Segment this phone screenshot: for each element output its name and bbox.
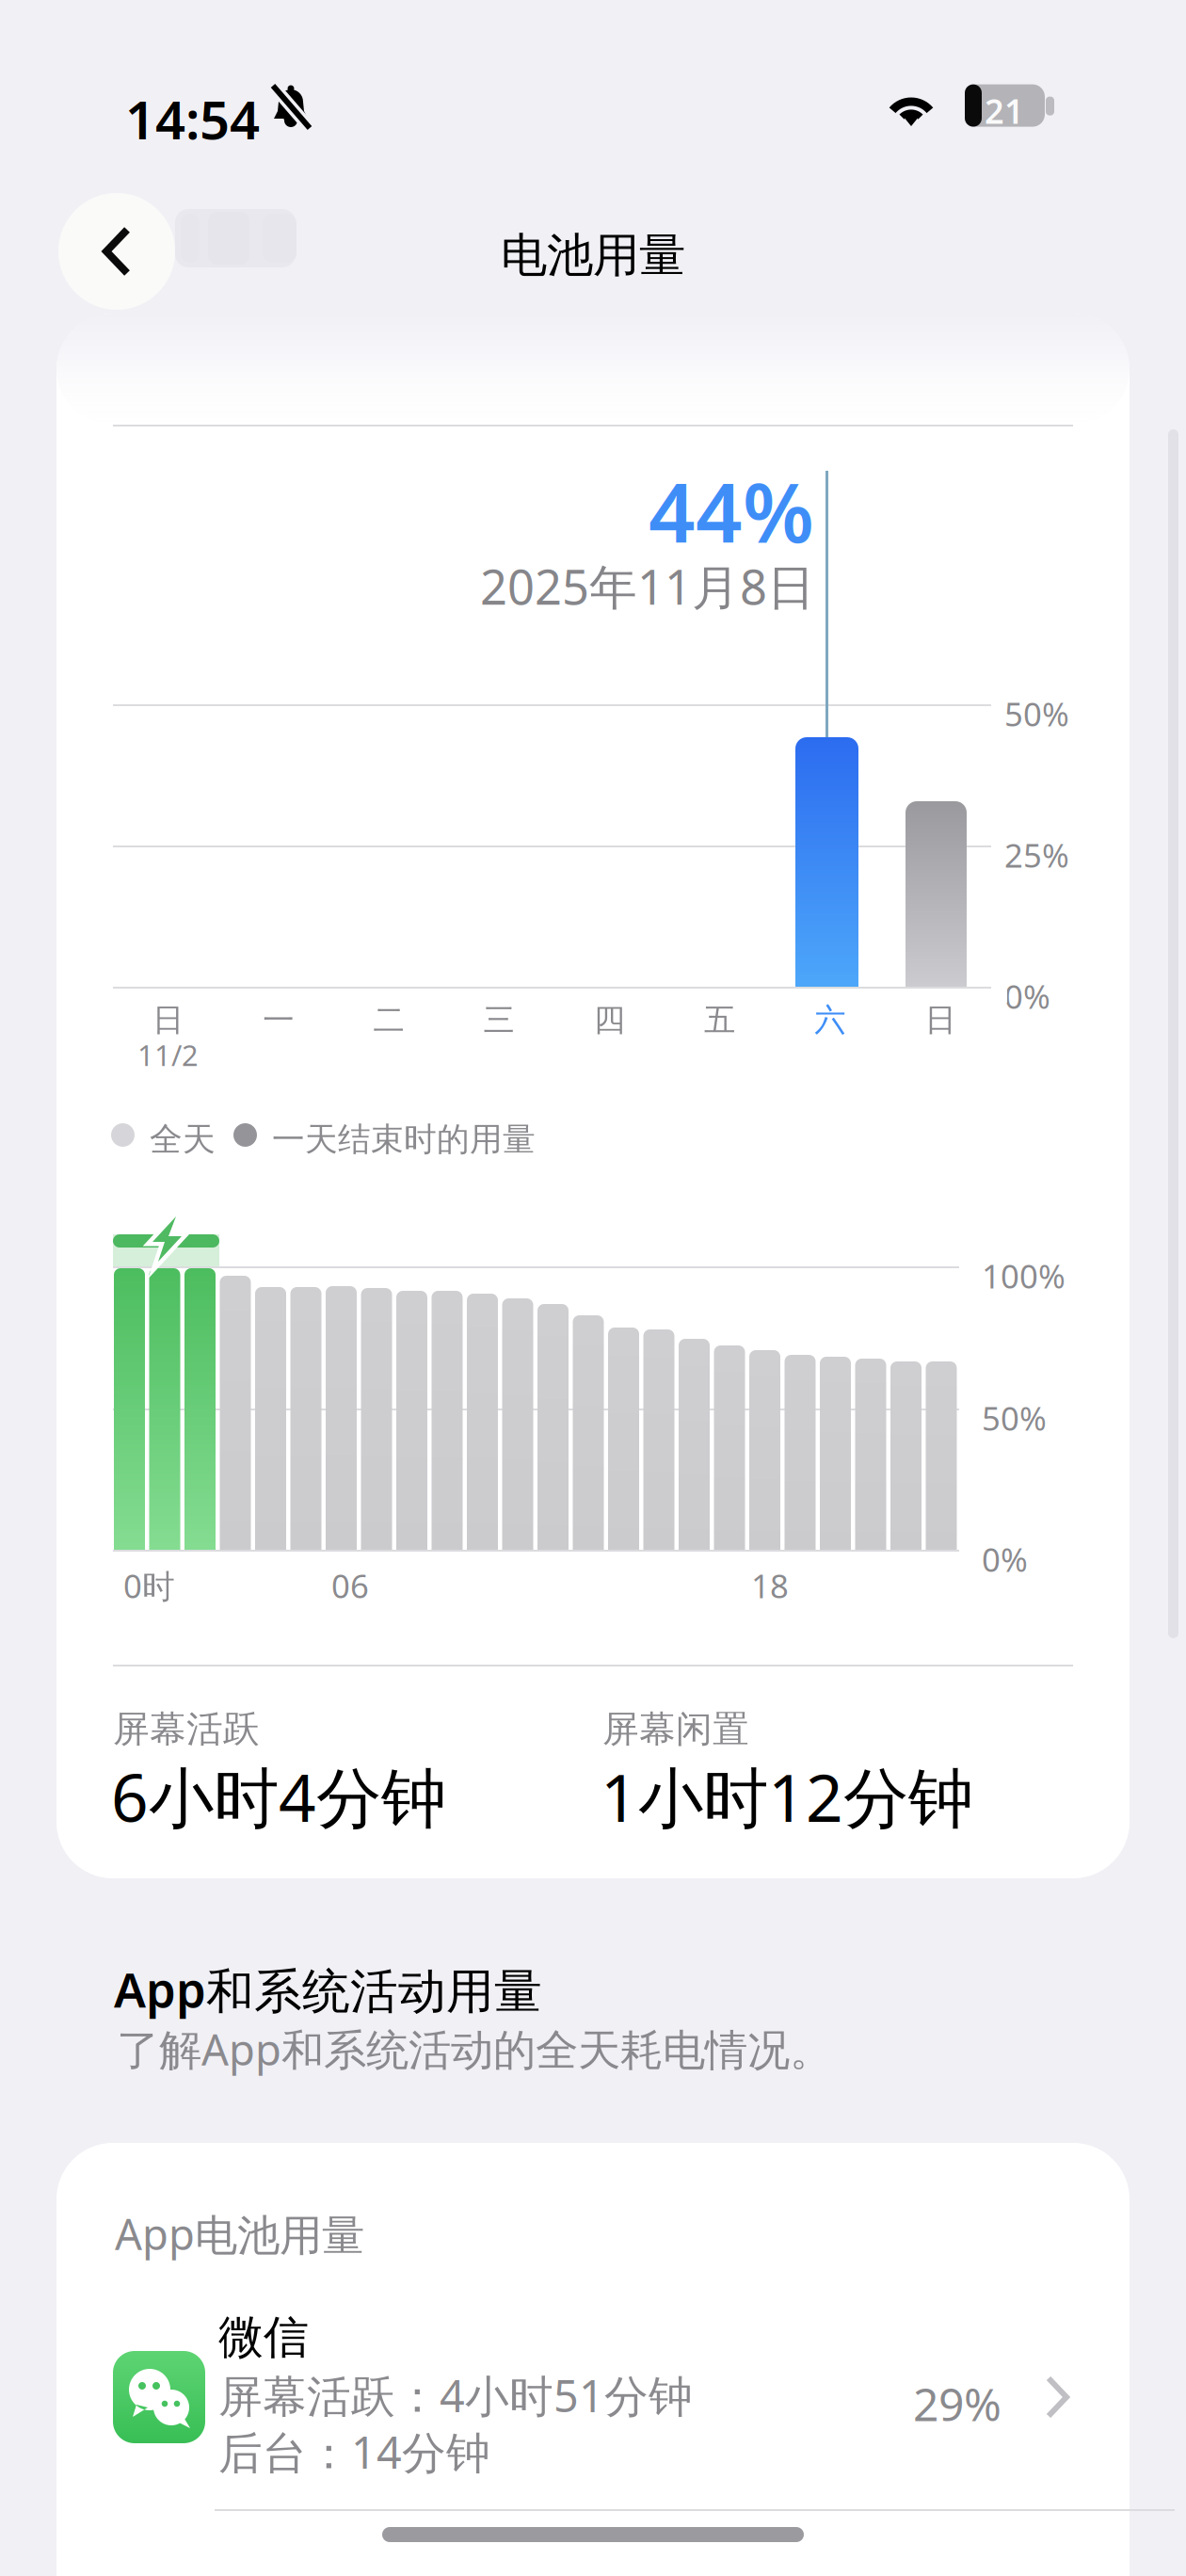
- staticText: 0%: [1004, 974, 1050, 1018]
- staticText: 50%: [1004, 692, 1069, 735]
- staticText: 四: [594, 1001, 625, 1039]
- staticText: 2025年11月8日: [480, 555, 815, 618]
- staticText: 一: [263, 1001, 294, 1039]
- staticText: 06: [331, 1564, 369, 1607]
- staticText: 44%: [649, 457, 814, 565]
- staticText: 屏幕闲置: [602, 1707, 749, 1752]
- staticText: 六: [814, 1001, 845, 1039]
- staticText: 29%: [913, 2374, 1002, 2434]
- staticText: 18: [751, 1564, 789, 1607]
- staticText: 14:54: [125, 84, 260, 154]
- staticText: 五: [704, 1001, 735, 1039]
- staticText: 6小时4分钟: [111, 1753, 446, 1840]
- staticText: App和系统活动用量: [114, 1957, 542, 2021]
- staticText: 100%: [982, 1254, 1066, 1297]
- staticText: 21: [985, 88, 1024, 133]
- staticText: 了解App和系统活动的全天耗电情况。: [117, 2021, 832, 2077]
- staticText: 一天结束时的用量: [272, 1119, 536, 1160]
- staticText: App电池用量: [115, 2205, 364, 2262]
- staticText: 二: [373, 1001, 404, 1039]
- button[interactable]: 微信: [56, 2285, 1130, 2509]
- staticText: 1小时12分钟: [601, 1753, 973, 1840]
- staticText: 屏幕活跃：4小时51分钟: [218, 2366, 693, 2424]
- button[interactable]: Back: [58, 193, 175, 310]
- staticText: 25%: [1004, 833, 1069, 877]
- staticText: 日: [152, 1001, 184, 1039]
- staticText: 屏幕活跃: [113, 1707, 260, 1752]
- staticText: 三: [483, 1001, 514, 1039]
- staticText: 日: [925, 1001, 956, 1039]
- staticText: 0%: [982, 1538, 1028, 1581]
- staticText: 微信: [218, 2310, 309, 2365]
- staticText: 全天: [150, 1119, 216, 1160]
- staticText: 11/2: [137, 1036, 199, 1074]
- staticText: 电池用量: [501, 227, 685, 284]
- staticText: 0时: [123, 1564, 175, 1607]
- staticText: 50%: [982, 1396, 1047, 1440]
- staticText: 后台：14分钟: [218, 2423, 490, 2481]
